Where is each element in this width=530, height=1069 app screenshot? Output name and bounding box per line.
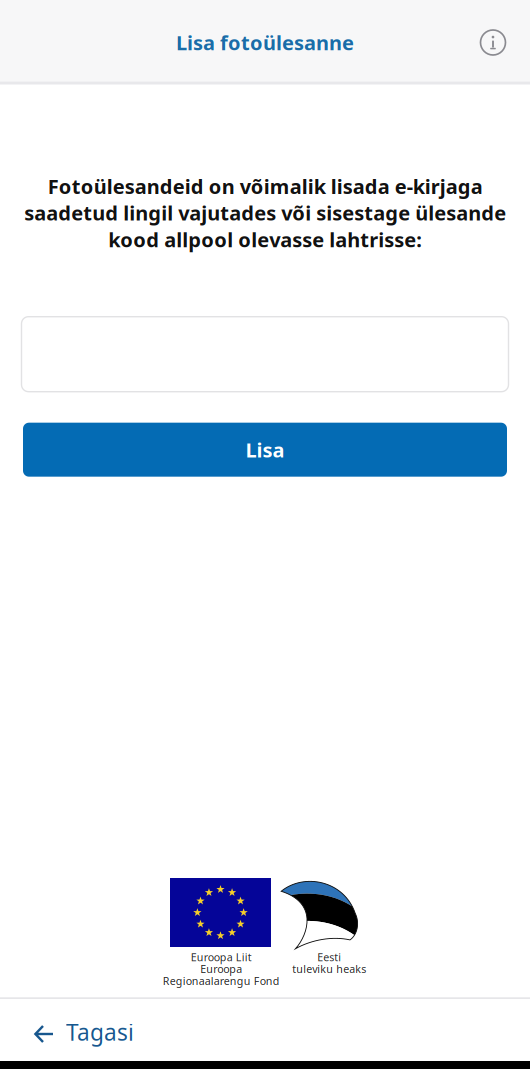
staticText: Fotoülesandeid on võimalik lisada e-kirj… (24, 173, 506, 253)
staticText: Lisa (245, 436, 284, 463)
staticText: Eesti tuleviku heaks (292, 950, 366, 976)
button[interactable]: Tagasi (0, 1003, 134, 1057)
staticText: Euroopa Liit Euroopa Regionaalarengu Fon… (162, 950, 279, 988)
button[interactable]: Info (478, 27, 508, 57)
button[interactable]: Lisa (23, 423, 507, 477)
staticText: Lisa fotoülesanne (176, 29, 354, 56)
staticText: Tagasi (66, 1017, 134, 1047)
